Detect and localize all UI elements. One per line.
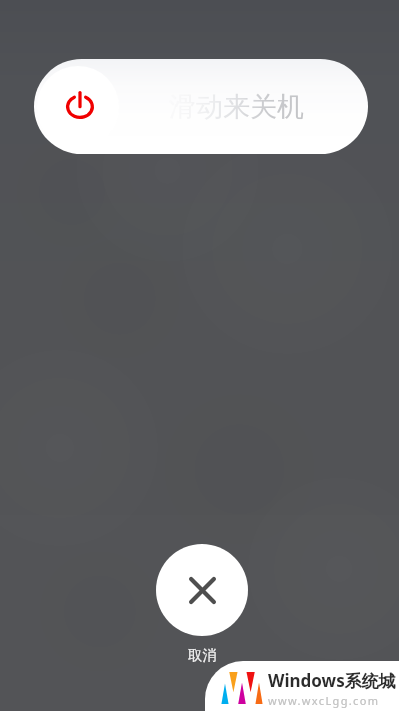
button[interactable]: 取消 (156, 544, 248, 636)
staticText: 取消 (188, 646, 217, 664)
staticText: www.wxcLgg.com (268, 693, 380, 708)
staticText: 滑动来关机 (169, 90, 304, 124)
button[interactable]: 滑动来关机 (34, 59, 368, 154)
staticText: Windows系统城 (268, 669, 396, 692)
